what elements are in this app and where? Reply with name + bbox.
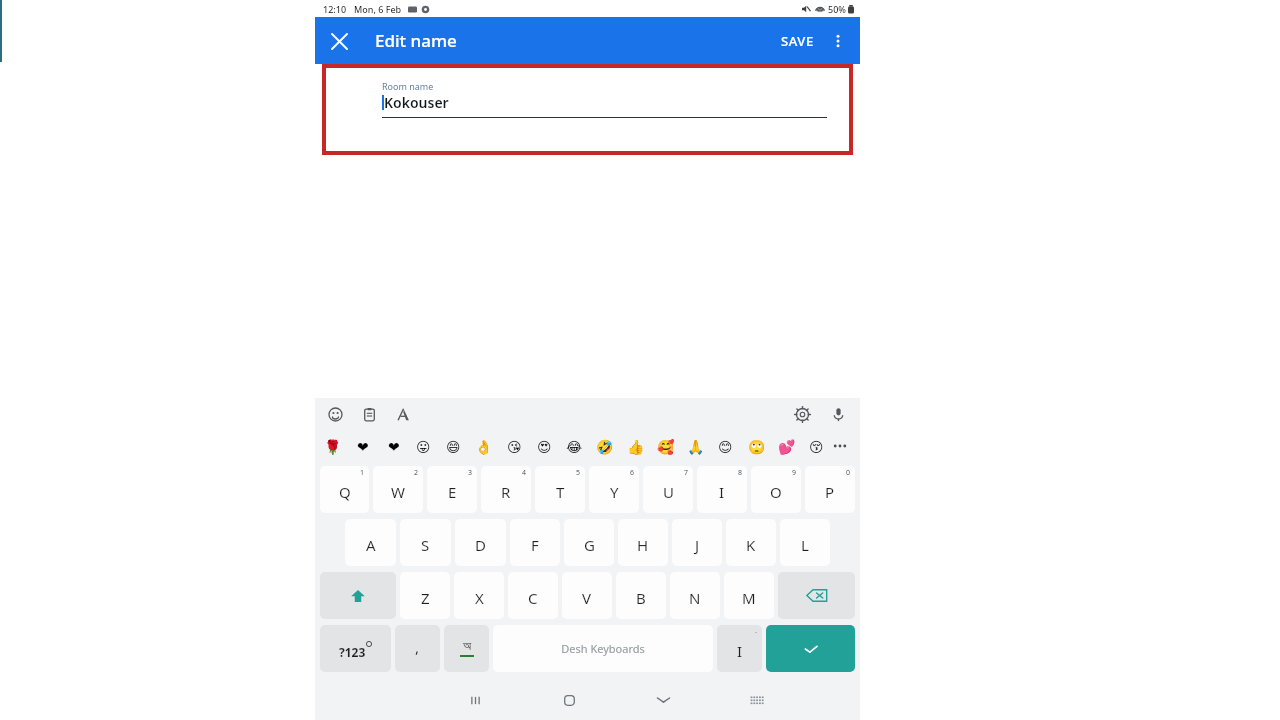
button[interactable]: 😚 xyxy=(807,437,826,456)
button[interactable]: Hide keyboard xyxy=(616,680,710,720)
button[interactable]: 😄 xyxy=(444,437,463,456)
button[interactable]: Clipboard xyxy=(359,404,379,424)
staticText: E xyxy=(448,482,457,502)
staticText: 12:10 xyxy=(323,3,347,15)
button[interactable]: Settings xyxy=(792,404,812,424)
button[interactable]: Z xyxy=(400,572,450,619)
button[interactable]: L xyxy=(780,519,830,566)
staticText: N xyxy=(689,588,701,608)
button[interactable]: B xyxy=(616,572,666,619)
staticText: O xyxy=(770,482,782,502)
staticText: F xyxy=(531,535,539,555)
button[interactable]: 👌 xyxy=(474,437,493,456)
button[interactable]: 😛 xyxy=(414,437,433,456)
staticText: 😄 xyxy=(446,439,461,455)
button[interactable]: More options xyxy=(820,23,856,59)
button[interactable]: M xyxy=(724,572,774,619)
button[interactable]: ❤️ xyxy=(353,437,372,456)
staticText: J xyxy=(695,535,700,555)
staticText: L xyxy=(801,535,809,555)
staticText: Desh Keyboards xyxy=(561,641,645,656)
button[interactable]: Stickers xyxy=(325,404,345,424)
button[interactable]: 0 xyxy=(805,466,855,513)
staticText: Kokouser xyxy=(384,93,449,112)
button[interactable]: G xyxy=(564,519,614,566)
staticText: 👍 xyxy=(627,439,645,455)
button[interactable]: J xyxy=(672,519,722,566)
button[interactable]: 😊 xyxy=(716,437,735,456)
staticText: M xyxy=(742,588,756,608)
staticText: Edit name xyxy=(375,29,457,52)
button[interactable]: A xyxy=(345,519,396,566)
button[interactable]: 😍 xyxy=(535,437,554,456)
button[interactable]: Enter xyxy=(766,625,855,672)
button[interactable]: ?123 xyxy=(320,625,391,672)
staticText: SAVE xyxy=(781,32,814,50)
button[interactable]: 1 xyxy=(320,466,369,513)
button[interactable]: Backspace xyxy=(778,572,855,619)
button[interactable]: Room name xyxy=(382,80,827,118)
button[interactable]: 4 xyxy=(481,466,531,513)
staticText: 50% xyxy=(828,3,846,15)
staticText: Y xyxy=(610,482,619,502)
button[interactable]: Home xyxy=(522,680,616,720)
staticText: 8 xyxy=(738,468,743,478)
button[interactable]: D xyxy=(455,519,506,566)
button[interactable]: SAVE xyxy=(775,24,820,58)
button[interactable]: 💕 xyxy=(777,437,796,456)
button[interactable]: Recents xyxy=(428,680,522,720)
button[interactable]: K xyxy=(726,519,776,566)
button[interactable]: ❤️ xyxy=(384,437,403,456)
staticText: 🙏 xyxy=(687,439,705,455)
button[interactable]: . xyxy=(717,625,762,672)
button[interactable]: 🌹 xyxy=(323,437,342,456)
button[interactable]: 😂 xyxy=(565,437,584,456)
staticText: 😘 xyxy=(507,439,522,455)
button[interactable]: 3 xyxy=(427,466,477,513)
button[interactable]: Close xyxy=(319,21,359,61)
button[interactable]: N xyxy=(670,572,720,619)
staticText: D xyxy=(475,535,486,555)
staticText: 🤣 xyxy=(596,439,614,455)
staticText: 👌 xyxy=(475,439,493,455)
button[interactable]: 🥰 xyxy=(656,437,675,456)
staticText: G xyxy=(584,535,595,555)
staticText: B xyxy=(636,588,646,608)
button[interactable]: 🙏 xyxy=(686,437,705,456)
button[interactable]: 👍 xyxy=(626,437,645,456)
button[interactable]: 9 xyxy=(751,466,801,513)
staticText: A xyxy=(366,535,376,555)
button[interactable]: More emoji xyxy=(830,436,850,456)
button[interactable]: 🙄 xyxy=(747,437,766,456)
button[interactable]: Desh Keyboards xyxy=(493,625,713,672)
button[interactable]: S xyxy=(400,519,451,566)
staticText: I xyxy=(719,482,725,502)
button[interactable]: F xyxy=(510,519,560,566)
staticText: 🥰 xyxy=(657,439,675,455)
button[interactable]: Change language xyxy=(444,625,489,672)
staticText: , xyxy=(415,637,420,657)
button[interactable]: 8 xyxy=(697,466,747,513)
staticText: ❤️ xyxy=(357,439,369,455)
staticText: K xyxy=(746,535,756,555)
staticText: 7 xyxy=(684,468,689,478)
button[interactable]: Text style xyxy=(393,404,413,424)
staticText: I xyxy=(737,641,743,661)
staticText: C xyxy=(528,588,538,608)
button[interactable]: 😘 xyxy=(505,437,524,456)
staticText: 😍 xyxy=(537,439,552,455)
button[interactable]: Switch keyboard xyxy=(710,680,804,720)
button[interactable]: 2 xyxy=(373,466,423,513)
button[interactable]: V xyxy=(562,572,612,619)
button[interactable]: X xyxy=(454,572,504,619)
button[interactable]: Voice input xyxy=(828,404,848,424)
button[interactable]: 6 xyxy=(589,466,639,513)
button[interactable]: C xyxy=(508,572,558,619)
button[interactable]: 5 xyxy=(535,466,585,513)
button[interactable]: , xyxy=(395,625,440,672)
button[interactable]: 🤣 xyxy=(595,437,614,456)
button[interactable]: 7 xyxy=(643,466,693,513)
staticText: X xyxy=(475,588,484,608)
button[interactable]: Shift xyxy=(320,572,396,619)
button[interactable]: H xyxy=(618,519,668,566)
